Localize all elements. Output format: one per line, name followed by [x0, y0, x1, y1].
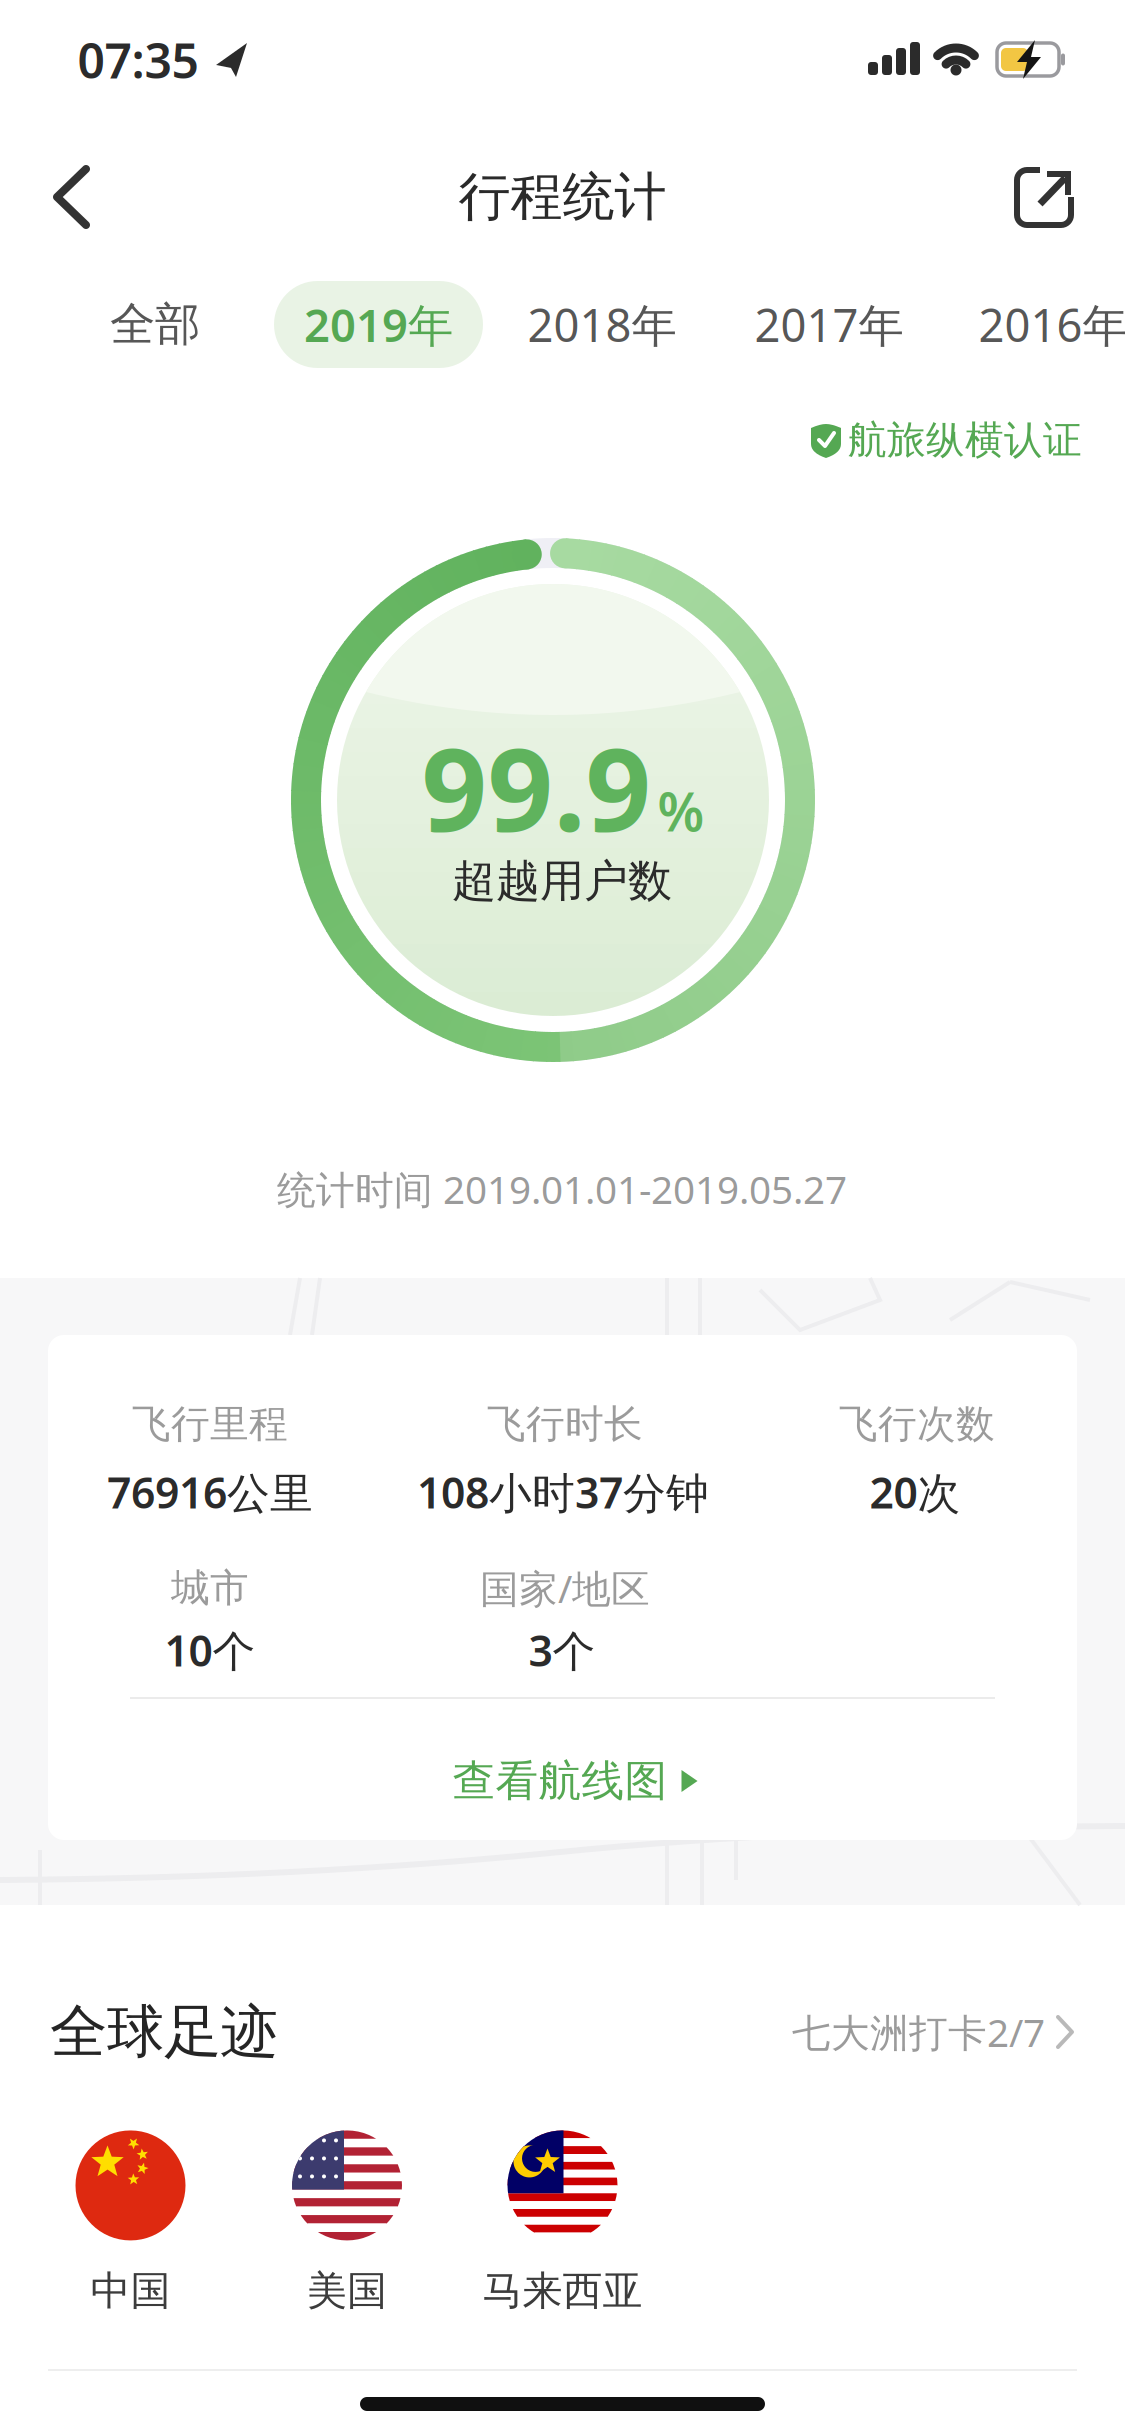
button[interactable]: 中国 [75, 2130, 185, 2315]
button[interactable]: 美国 [292, 2130, 402, 2315]
staticText: 飞行次数 [839, 1400, 995, 1448]
staticText: 全球足迹 [50, 1997, 278, 2067]
staticText: 2018年 [527, 294, 676, 355]
staticText: 76916公里 [107, 1464, 313, 1520]
staticText: 超越用户数 [452, 854, 672, 908]
staticText: 108小时37分钟 [417, 1464, 709, 1520]
staticText: 中国 [90, 2266, 170, 2315]
staticText: 2017年 [754, 294, 903, 355]
staticText: 20次 [869, 1464, 960, 1520]
button[interactable]: Back [24, 147, 124, 247]
staticText: 10个 [164, 1622, 255, 1678]
button[interactable]: 2018年 [502, 281, 702, 368]
button[interactable]: 2017年 [729, 281, 929, 368]
staticText: 城市 [171, 1564, 249, 1612]
staticText: 飞行时长 [487, 1400, 643, 1448]
staticText: 07:35 [77, 28, 198, 92]
button[interactable]: Share [994, 147, 1094, 247]
staticText: 七大洲打卡2/7 [792, 2006, 1045, 2058]
staticText: 2016年 [978, 294, 1125, 355]
button[interactable]: 全部 [65, 281, 245, 368]
staticText: 2019年 [304, 294, 453, 355]
staticText: 99.9 [421, 711, 651, 863]
staticText: 3个 [528, 1622, 595, 1678]
staticText: 航旅纵横认证 [848, 416, 1082, 464]
staticText: 飞行里程 [132, 1400, 288, 1448]
staticText: 统计时间 2019.01.01-2019.05.27 [277, 1163, 847, 1215]
staticText: 行程统计 [458, 165, 666, 229]
staticText: 美国 [307, 2266, 387, 2315]
button[interactable]: 马来西亚 [482, 2130, 642, 2315]
staticText: 马来西亚 [482, 2266, 642, 2315]
staticText: % [657, 775, 704, 846]
staticText: 国家/地区 [480, 1562, 650, 1614]
button[interactable]: 查看航线图 [452, 1741, 697, 1821]
staticText: 查看航线图 [452, 1755, 667, 1807]
staticText: 全部 [110, 297, 200, 352]
button[interactable]: 2019年 [274, 281, 483, 368]
button[interactable]: 七大洲打卡2/7 [792, 2006, 1075, 2058]
button[interactable]: 2016年 [953, 281, 1125, 368]
